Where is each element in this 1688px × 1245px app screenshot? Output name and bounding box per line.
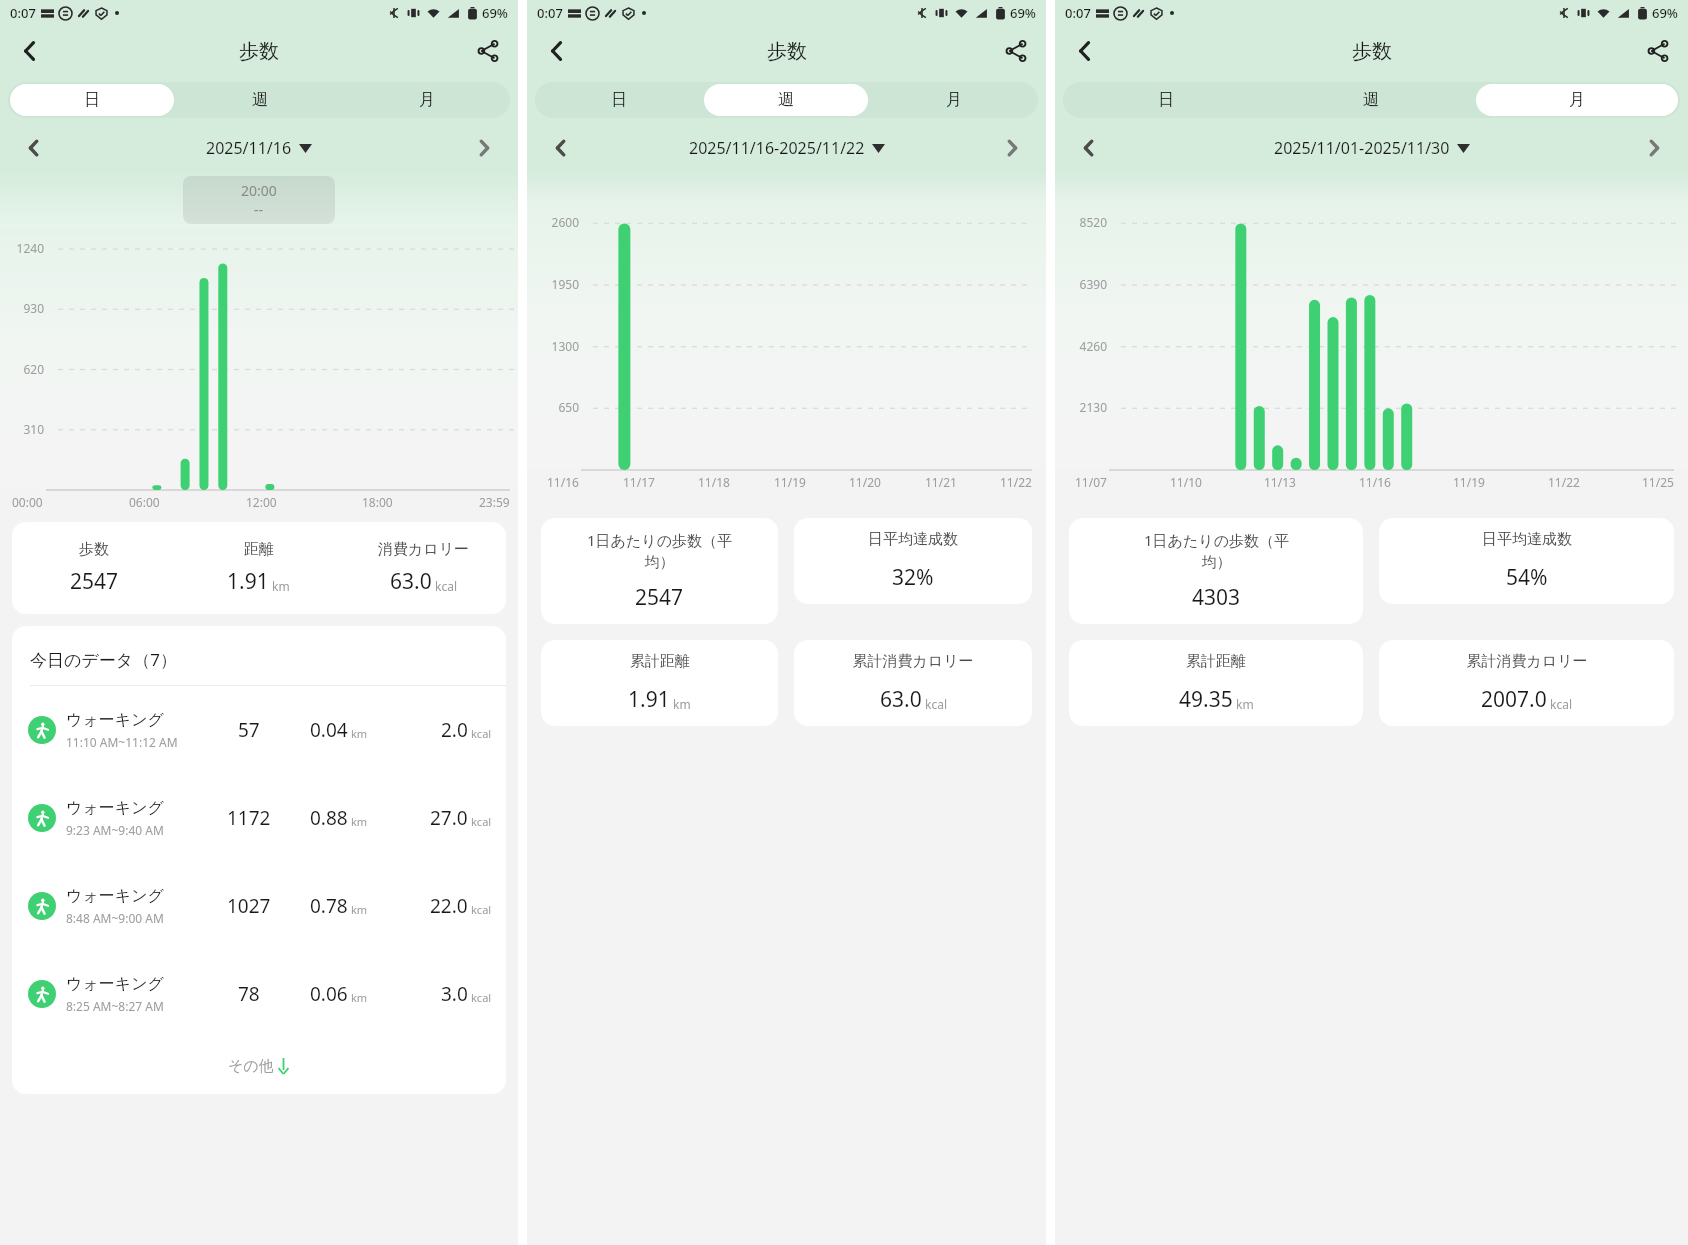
button[interactable]: ウォーキング [12, 862, 506, 950]
button[interactable]: 1日あたりの歩数（平 均） [541, 518, 778, 624]
staticText: 日平均達成数 [1482, 530, 1572, 549]
button[interactable]: 日 [10, 84, 174, 116]
button[interactable]: 日平均達成数 [794, 518, 1032, 604]
staticText: ウォーキング [66, 886, 164, 906]
staticText: 11/07 [1075, 474, 1107, 490]
staticText: 2007.0 [1481, 685, 1547, 714]
button[interactable]: 累計消費カロリー [794, 640, 1032, 726]
staticText: 1日あたりの歩数（平 均） [587, 530, 732, 571]
staticText: 歩数 [767, 39, 807, 64]
button[interactable]: 週 [1270, 84, 1472, 116]
button[interactable]: Previous [14, 128, 54, 168]
staticText: 月 [419, 90, 435, 110]
staticText: 2025/11/16-2025/11/22 [689, 137, 865, 159]
staticText: 距離 [244, 540, 274, 559]
button[interactable]: Previous [1069, 128, 1109, 168]
button[interactable]: Next [1634, 128, 1674, 168]
staticText: 57 [238, 717, 260, 743]
staticText: 11/10 [1170, 474, 1202, 490]
button[interactable]: Share [994, 29, 1038, 73]
button[interactable]: 2025/11/01-2025/11/30 [1109, 137, 1634, 159]
staticText: 2025/11/01-2025/11/30 [1274, 137, 1450, 159]
staticText: 月 [946, 90, 962, 110]
staticText: 0:07 [537, 4, 563, 22]
staticText: 11/19 [774, 474, 806, 490]
staticText: 1日あたりの歩数（平 均） [1144, 530, 1289, 571]
staticText: 週 [1363, 90, 1379, 110]
button[interactable]: Back [8, 29, 52, 73]
button[interactable]: 日 [537, 84, 700, 116]
staticText: km [351, 990, 368, 1005]
staticText: 11/25 [1642, 474, 1674, 490]
button[interactable]: Share [1636, 29, 1680, 73]
staticText: 週 [778, 90, 794, 110]
staticText: kcal [925, 696, 947, 712]
staticText: 1300 [529, 338, 579, 354]
staticText: 12:00 [246, 494, 277, 510]
staticText: 0.78 [310, 893, 348, 919]
button[interactable]: ウォーキング [12, 950, 506, 1038]
staticText: km [272, 578, 290, 594]
button[interactable]: 歩数 [12, 540, 506, 596]
staticText: 63.0 [390, 567, 432, 596]
staticText: km [1236, 696, 1254, 712]
button[interactable]: 月 [1476, 84, 1678, 116]
button[interactable]: Next [464, 128, 504, 168]
staticText: 消費カロリー [378, 540, 470, 559]
staticText: 11/19 [1453, 474, 1485, 490]
button[interactable]: 2025/11/16-2025/11/22 [581, 137, 992, 159]
staticText: 日 [84, 90, 100, 110]
staticText: 11/22 [1548, 474, 1580, 490]
button[interactable]: 月 [872, 84, 1036, 116]
button[interactable]: Share [466, 29, 510, 73]
button[interactable]: 1日あたりの歩数（平 均） [1069, 518, 1363, 624]
staticText: ウォーキング [66, 710, 164, 730]
button[interactable]: 日 [1065, 84, 1266, 116]
button[interactable]: Previous [541, 128, 581, 168]
button[interactable]: Next [992, 128, 1032, 168]
staticText: 1.91 [628, 685, 670, 714]
button[interactable]: その他 [12, 1038, 506, 1094]
staticText: 累計距離 [1186, 652, 1246, 671]
button[interactable]: 月 [345, 84, 508, 116]
staticText: 累計消費カロリー [852, 652, 974, 671]
staticText: 今日のデータ（7） [30, 648, 177, 671]
button[interactable]: 週 [178, 84, 341, 116]
staticText: km [351, 726, 368, 741]
button[interactable]: 累計消費カロリー [1379, 640, 1674, 726]
button[interactable]: Back [535, 29, 579, 73]
button[interactable]: 日平均達成数 [1379, 518, 1674, 604]
staticText: 6390 [1057, 276, 1107, 292]
button[interactable]: ウォーキング [12, 686, 506, 774]
staticText: ウォーキング [66, 974, 164, 994]
staticText: 0:07 [1065, 4, 1091, 22]
staticText: 63.0 [880, 685, 922, 714]
button[interactable]: 週 [704, 84, 868, 116]
staticText: 11/17 [623, 474, 655, 490]
staticText: 3.0 [441, 981, 468, 1007]
staticText: 22.0 [430, 893, 468, 919]
staticText: 0.06 [310, 981, 348, 1007]
staticText: 11/16 [547, 474, 579, 490]
staticText: kcal [471, 814, 492, 829]
button[interactable]: ウォーキング [12, 774, 506, 862]
staticText: km [673, 696, 691, 712]
staticText: 1950 [529, 276, 579, 292]
staticText: 18:00 [362, 494, 393, 510]
staticText: 1027 [227, 893, 271, 919]
button[interactable]: 累計距離 [1069, 640, 1363, 726]
staticText: kcal [471, 726, 492, 741]
staticText: 4303 [1192, 583, 1241, 612]
staticText: 49.35 [1179, 685, 1233, 714]
button[interactable]: Back [1063, 29, 1107, 73]
staticText: 78 [238, 981, 260, 1007]
staticText: kcal [1550, 696, 1572, 712]
staticText: 月 [1569, 90, 1585, 110]
staticText: 0:07 [10, 4, 36, 22]
staticText: 06:00 [129, 494, 160, 510]
staticText: 日 [611, 90, 627, 110]
button[interactable]: 累計距離 [541, 640, 778, 726]
staticText: 11/18 [698, 474, 730, 490]
button[interactable]: 2025/11/16 [54, 137, 464, 159]
staticText: その他 [228, 1057, 274, 1076]
